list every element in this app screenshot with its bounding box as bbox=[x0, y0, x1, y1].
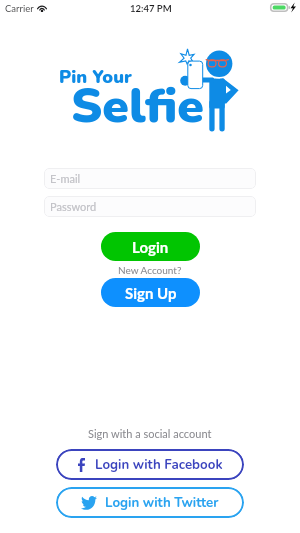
staticText: Password bbox=[50, 200, 97, 213]
button[interactable]: Password bbox=[44, 196, 256, 217]
button[interactable]: Sign Up bbox=[101, 278, 200, 307]
staticText: 12:47 PM bbox=[130, 3, 172, 14]
staticText: Sign with a social account bbox=[88, 427, 212, 440]
staticText: Login with Twitter bbox=[105, 494, 219, 512]
staticText: Pin Your bbox=[59, 65, 132, 90]
staticText: Login bbox=[132, 238, 169, 256]
staticText: Login with Facebook bbox=[95, 456, 223, 474]
button[interactable]: Login with Facebook bbox=[56, 449, 244, 480]
staticText: E-mail bbox=[50, 172, 81, 185]
staticText: Carrier bbox=[5, 3, 34, 14]
staticText: Selfie bbox=[71, 73, 204, 138]
button[interactable]: Login bbox=[101, 232, 200, 261]
button[interactable]: E-mail bbox=[44, 168, 256, 189]
staticText: New Account? bbox=[118, 264, 182, 276]
button[interactable]: Login with Twitter bbox=[56, 487, 244, 518]
staticText: Sign Up bbox=[125, 284, 177, 302]
